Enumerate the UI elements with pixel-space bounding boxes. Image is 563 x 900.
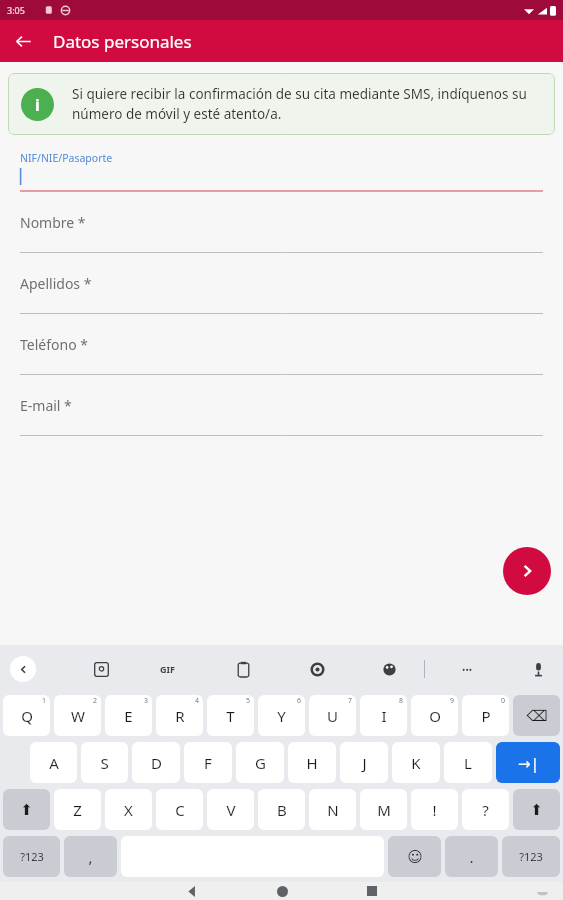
button[interactable]: Teléfono *	[20, 314, 543, 375]
button[interactable]: L	[444, 742, 492, 783]
staticText: ⬆	[20, 801, 33, 818]
button[interactable]: Back	[177, 882, 207, 900]
staticText: X	[124, 800, 133, 820]
button[interactable]: ⬆	[3, 789, 50, 830]
button[interactable]: D	[132, 742, 180, 783]
staticText: ⌫	[526, 707, 548, 724]
button[interactable]: Close toolbar	[10, 656, 36, 682]
button[interactable]: ⌫	[513, 695, 560, 736]
staticText: B	[277, 800, 287, 820]
button[interactable]: N	[309, 789, 356, 830]
staticText: Datos personales	[53, 30, 192, 53]
staticText: O	[429, 706, 441, 726]
button[interactable]: ,	[64, 836, 117, 877]
button[interactable]: Nombre *	[20, 192, 543, 253]
button[interactable]: Back	[6, 24, 40, 58]
button[interactable]: J	[340, 742, 388, 783]
button[interactable]: Apellidos *	[20, 253, 543, 314]
staticText: ?123	[519, 849, 543, 864]
button[interactable]: Recent apps	[357, 882, 387, 900]
button[interactable]: G	[236, 742, 284, 783]
button[interactable]: Voice input	[523, 654, 553, 684]
button[interactable]: Theme	[374, 654, 404, 684]
staticText: i	[35, 94, 40, 116]
staticText: C	[175, 800, 185, 820]
staticText: K	[411, 753, 421, 773]
staticText: E	[124, 706, 133, 726]
staticText: →|	[518, 753, 539, 773]
button[interactable]: W	[54, 695, 101, 736]
button[interactable]: K	[392, 742, 440, 783]
button[interactable]: Settings	[302, 654, 332, 684]
staticText: •••	[462, 663, 473, 675]
staticText: F	[204, 753, 212, 773]
button[interactable]: ?123	[3, 836, 60, 877]
staticText: 3:05	[7, 4, 25, 16]
button[interactable]: R	[156, 695, 203, 736]
button[interactable]: B	[258, 789, 305, 830]
button[interactable]: T	[207, 695, 254, 736]
staticText: J	[362, 753, 367, 773]
button[interactable]: Clipboard	[228, 654, 258, 684]
button[interactable]: →|	[496, 742, 560, 783]
button[interactable]: X	[105, 789, 152, 830]
staticText: ,	[88, 847, 93, 867]
staticText: I	[381, 706, 387, 726]
button[interactable]: Hide keyboard	[529, 882, 555, 900]
button[interactable]: Sticker	[86, 654, 116, 684]
button[interactable]: Y	[258, 695, 305, 736]
staticText: ?	[482, 800, 489, 820]
button[interactable]: I	[360, 695, 407, 736]
button[interactable]: More	[452, 654, 482, 684]
button[interactable]: .	[445, 836, 498, 877]
staticText: Q	[21, 706, 33, 726]
button[interactable]: F	[184, 742, 232, 783]
button[interactable]: GIF	[152, 654, 182, 684]
staticText: P	[481, 706, 491, 726]
staticText: 6	[297, 696, 302, 706]
button[interactable]: Z	[54, 789, 101, 830]
button[interactable]: C	[156, 789, 203, 830]
button[interactable]: A	[30, 742, 77, 783]
staticText: A	[49, 753, 59, 773]
staticText: Apellidos *	[20, 274, 92, 293]
button[interactable]: Q	[3, 695, 50, 736]
button[interactable]: Next	[503, 547, 551, 595]
staticText: 2	[93, 696, 98, 706]
button[interactable]: V	[207, 789, 254, 830]
button[interactable]: E	[105, 695, 152, 736]
staticText: 9	[450, 696, 455, 706]
staticText: 4	[195, 696, 200, 706]
staticText: .	[469, 847, 474, 867]
staticText: Z	[73, 800, 82, 820]
button[interactable]: E-mail *	[20, 375, 543, 436]
button[interactable]: ⬆	[513, 789, 560, 830]
staticText: ?123	[20, 849, 44, 864]
button[interactable]: M	[360, 789, 407, 830]
staticText: 8	[399, 696, 404, 706]
button[interactable]: P	[462, 695, 509, 736]
button[interactable]: !	[411, 789, 458, 830]
staticText: Si quiere recibir la confirmación de su …	[72, 85, 542, 123]
button[interactable]: NIF/NIE/Pasaporte	[20, 151, 543, 192]
staticText: T	[226, 706, 235, 726]
staticText: Nombre *	[20, 213, 86, 232]
button[interactable]: S	[81, 742, 128, 783]
button[interactable]: H	[288, 742, 336, 783]
button[interactable]: ?123	[502, 836, 560, 877]
button[interactable]: U	[309, 695, 356, 736]
staticText: G	[255, 753, 266, 773]
staticText: N	[327, 800, 339, 820]
staticText: W	[71, 706, 85, 726]
button[interactable]: ?	[462, 789, 509, 830]
staticText: Teléfono *	[20, 335, 88, 354]
staticText: V	[226, 800, 236, 820]
button[interactable]: ☺	[388, 836, 441, 877]
button[interactable]: O	[411, 695, 458, 736]
staticText: 5	[246, 696, 251, 706]
staticText: 1	[42, 696, 47, 706]
button[interactable]: Home	[267, 882, 297, 900]
staticText: 7	[348, 696, 353, 706]
staticText: ☺	[407, 848, 423, 865]
